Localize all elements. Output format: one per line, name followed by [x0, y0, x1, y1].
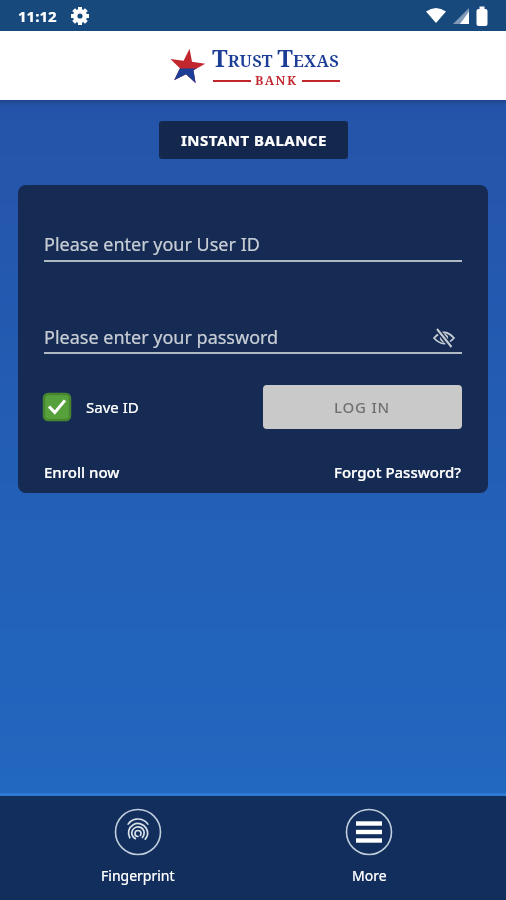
button[interactable]: LOG IN [263, 385, 462, 429]
staticText: Save ID [86, 397, 139, 417]
staticText: Please enter your password [44, 325, 279, 350]
button[interactable]: More [309, 799, 429, 894]
staticText: Enroll now [44, 462, 120, 482]
button[interactable]: Forgot Password? [334, 462, 462, 482]
staticText: BANK [255, 72, 298, 89]
staticText: INSTANT BALANCE [181, 130, 327, 150]
staticText: More [352, 866, 387, 885]
staticText: LOG IN [334, 397, 391, 417]
button[interactable]: Save ID [44, 394, 139, 420]
staticText: 11:12 [18, 6, 57, 26]
button[interactable]: INSTANT BALANCE [159, 121, 348, 159]
button[interactable]: Enroll now [44, 462, 120, 482]
button[interactable]: Fingerprint [78, 799, 198, 894]
staticText: Forgot Password? [334, 462, 462, 482]
staticText: Fingerprint [101, 866, 175, 885]
staticText: TRUST TEXAS [212, 41, 340, 74]
staticText: Please enter your User ID [44, 232, 260, 257]
